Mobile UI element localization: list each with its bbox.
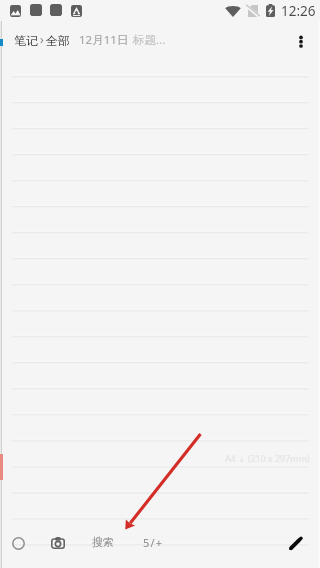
staticText: 5/+ [143, 535, 164, 550]
staticText: 搜索 [92, 535, 114, 549]
button[interactable]: More options [293, 30, 309, 50]
button[interactable]: Edit note [289, 537, 302, 550]
staticText: 12月11日 [79, 32, 129, 48]
staticText: 全部 [46, 33, 70, 48]
staticText: 标题... [133, 32, 166, 48]
button[interactable]: 5/+ [143, 535, 164, 550]
button[interactable]: 搜索 [92, 535, 114, 549]
button[interactable]: Camera [51, 537, 65, 549]
staticText: 12:26 [281, 2, 316, 20]
button[interactable]: 全部 [46, 33, 70, 48]
button[interactable]: 笔记 [14, 33, 38, 48]
staticText: 笔记 [14, 33, 38, 48]
staticText: A4 ↓ (210 x 297mm) [225, 452, 310, 464]
staticText: › [40, 31, 44, 47]
button[interactable]: Voice record [12, 537, 25, 550]
